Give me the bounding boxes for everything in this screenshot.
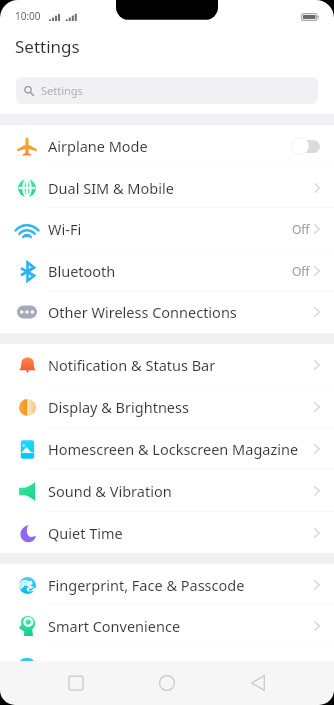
button[interactable]: Dual SIM & Mobile <box>0 167 334 208</box>
button[interactable]: Bluetooth <box>0 250 334 291</box>
staticText: 10:00 <box>15 9 41 23</box>
button[interactable]: Display & Brightness <box>0 386 334 428</box>
button[interactable]: Sound & Vibration <box>0 470 334 512</box>
staticText: Smart Convenience <box>48 616 181 636</box>
staticText: Settings <box>41 83 83 98</box>
button[interactable]: Special Function <box>0 647 334 661</box>
staticText: Fingerprint, Face & Passcode <box>48 575 245 595</box>
staticText: Homescreen & Lockscreen Magazine <box>48 439 299 459</box>
button[interactable]: Homescreen & Lockscreen Magazine <box>0 428 334 470</box>
staticText: Quiet Time <box>48 523 123 543</box>
button[interactable]: Notification & Status Bar <box>0 344 334 386</box>
button[interactable]: Settings <box>16 77 318 104</box>
staticText: Other Wireless Connections <box>48 302 237 322</box>
staticText: Off <box>292 221 310 237</box>
staticText: Sound & Vibration <box>48 481 172 501</box>
staticText: Off <box>292 263 310 279</box>
staticText: Bluetooth <box>48 261 116 281</box>
button[interactable]: Recents <box>53 661 99 705</box>
button[interactable]: Wi-Fi <box>0 208 334 250</box>
staticText: Wi-Fi <box>48 219 82 239</box>
button[interactable]: Home <box>144 661 190 705</box>
staticText: Airplane Mode <box>48 136 148 156</box>
button[interactable]: Quiet Time <box>0 512 334 553</box>
button[interactable]: Smart Convenience <box>0 605 334 647</box>
button[interactable]: Airplane Mode <box>0 125 334 167</box>
staticText: Notification & Status Bar <box>48 355 216 375</box>
staticText: Dual SIM & Mobile <box>48 178 174 198</box>
button[interactable]: Fingerprint, Face & Passcode <box>0 564 334 605</box>
button[interactable]: Back <box>235 661 281 705</box>
staticText: Settings <box>15 35 80 58</box>
staticText: Display & Brightness <box>48 397 189 417</box>
button[interactable]: Other Wireless Connections <box>0 291 334 333</box>
